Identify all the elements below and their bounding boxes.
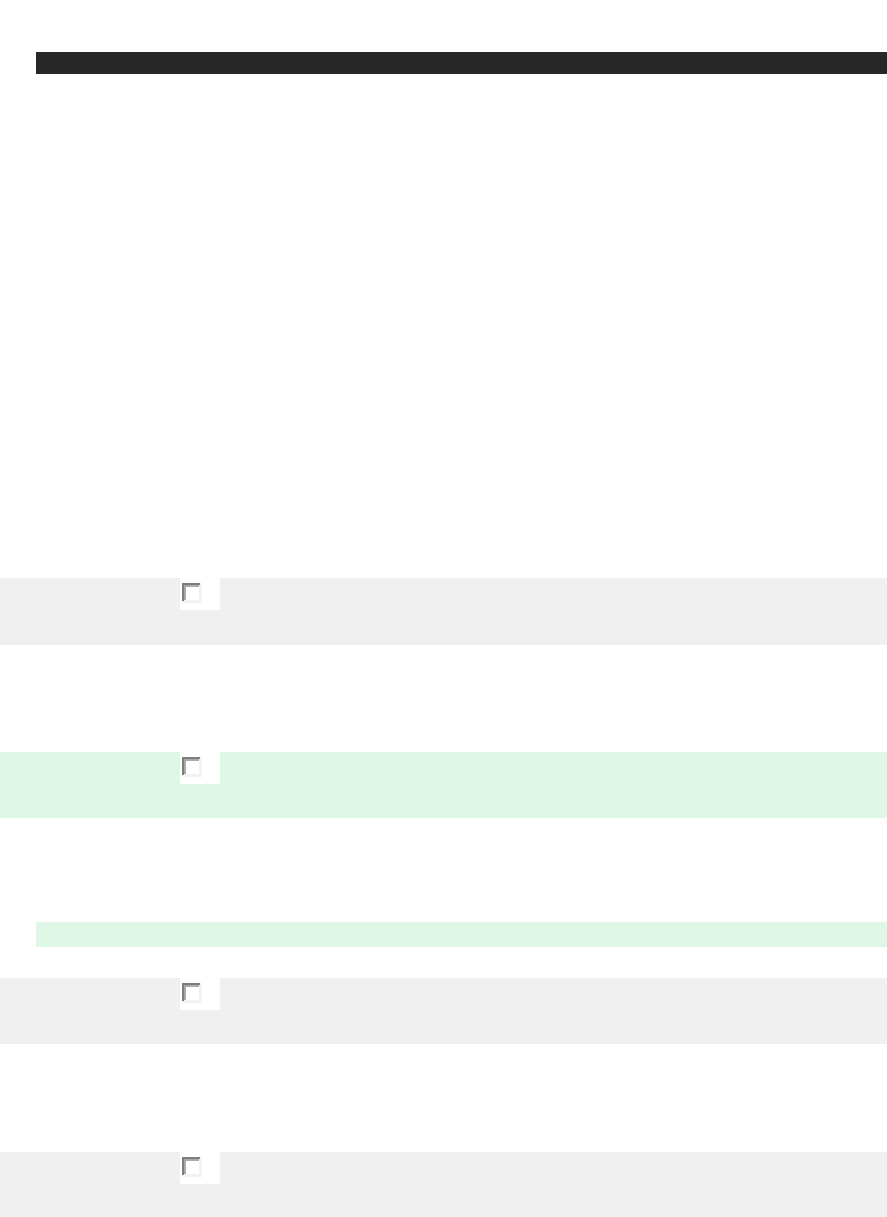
button[interactable]: Option two (0, 752, 887, 818)
button[interactable]: Checkbox (182, 757, 202, 777)
button[interactable]: Option two checkbox cell (180, 752, 220, 784)
button[interactable]: Checkbox (182, 1157, 202, 1177)
button[interactable]: Option one checkbox cell (180, 578, 220, 610)
button[interactable]: Option four (0, 1152, 887, 1217)
button[interactable]: Checkbox (182, 583, 202, 603)
button[interactable]: Option one (0, 578, 887, 645)
button[interactable]: Option three (0, 978, 887, 1044)
button[interactable]: Option three checkbox cell (180, 978, 220, 1010)
button[interactable]: Checkbox (182, 983, 202, 1003)
button[interactable]: Option four checkbox cell (180, 1152, 220, 1184)
